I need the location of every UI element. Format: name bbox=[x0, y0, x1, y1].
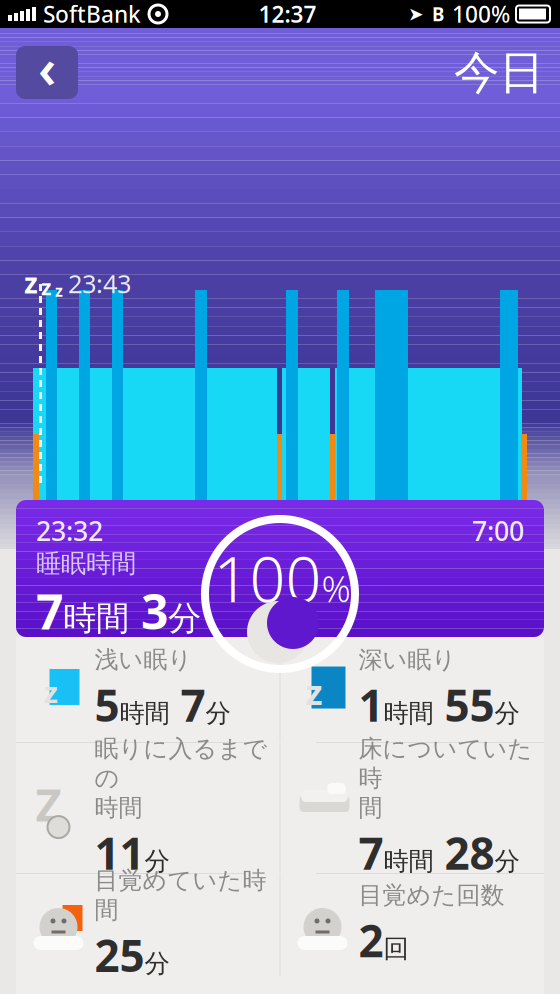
staticText: ➤ bbox=[408, 3, 424, 25]
staticText: 7 bbox=[358, 823, 383, 882]
staticText: 11 bbox=[94, 823, 144, 882]
staticText: 床についていた時 間 bbox=[358, 734, 532, 822]
staticText: 23:43 bbox=[68, 266, 131, 300]
button[interactable]: 床についていた時 間 bbox=[280, 743, 543, 873]
staticText: 時間 bbox=[119, 698, 169, 729]
staticText: SoftBank bbox=[43, 0, 141, 29]
staticText: 12:37 bbox=[258, 0, 316, 29]
staticText: 23:32 bbox=[36, 513, 103, 548]
staticText: 時間 bbox=[383, 846, 433, 877]
staticText: 時間 bbox=[63, 598, 129, 639]
staticText: 分 bbox=[144, 846, 169, 877]
button[interactable]: 目覚めていた時間 bbox=[16, 874, 279, 976]
staticText: 今日 bbox=[454, 45, 544, 101]
staticText: 目覚めていた時間 bbox=[94, 866, 266, 925]
staticText: 1 bbox=[358, 675, 383, 734]
button[interactable]: Z bbox=[16, 743, 279, 873]
button[interactable]: z bbox=[16, 637, 279, 742]
staticText: 28 bbox=[433, 823, 494, 882]
staticText: 回 bbox=[383, 933, 408, 964]
staticText: z bbox=[305, 668, 322, 714]
staticText: 分 bbox=[205, 698, 230, 729]
button[interactable]: 今日 bbox=[434, 47, 544, 99]
staticText: 目覚めた回数 bbox=[358, 880, 504, 910]
button[interactable]: 目覚めた回数 bbox=[280, 874, 543, 976]
staticText: Z bbox=[35, 774, 61, 834]
staticText: z bbox=[55, 280, 63, 301]
staticText: 分 bbox=[144, 948, 169, 979]
button[interactable]: Back bbox=[16, 46, 78, 99]
staticText: 眠りに入るまでの 時間 bbox=[94, 734, 267, 822]
staticText: 5 bbox=[94, 675, 119, 734]
staticText: ‹ bbox=[38, 32, 56, 103]
staticText: 55 bbox=[433, 675, 494, 734]
staticText: 分 bbox=[494, 698, 519, 729]
staticText: 深い眠り bbox=[358, 645, 456, 674]
staticText: 100 bbox=[213, 536, 321, 620]
staticText: 3 bbox=[129, 579, 168, 643]
staticText: 7 bbox=[169, 675, 205, 734]
staticText: z bbox=[43, 672, 57, 711]
staticText: 2 bbox=[358, 911, 383, 969]
staticText: z bbox=[41, 273, 52, 301]
staticText: 100% bbox=[452, 0, 510, 29]
staticText: 25 bbox=[94, 926, 144, 984]
staticText: 睡眠時間 bbox=[36, 548, 136, 579]
staticText: % bbox=[321, 564, 350, 612]
button[interactable]: z bbox=[280, 637, 543, 742]
staticText: 7:00 bbox=[472, 513, 524, 548]
staticText: 7 bbox=[36, 579, 63, 643]
staticText: 浅い眠り bbox=[94, 645, 192, 674]
staticText: z bbox=[24, 264, 38, 301]
staticText: 分 bbox=[494, 846, 519, 877]
staticText: B bbox=[432, 2, 444, 26]
staticText: 時間 bbox=[383, 698, 433, 729]
staticText: 分 bbox=[168, 598, 201, 639]
